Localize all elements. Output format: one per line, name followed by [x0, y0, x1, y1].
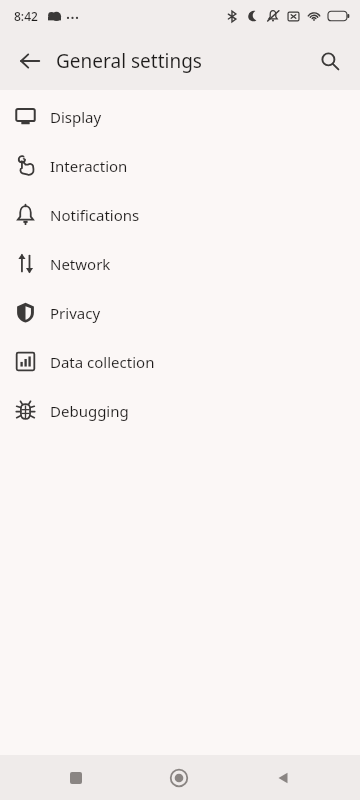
- staticText: General settings: [56, 48, 202, 74]
- button[interactable]: Search: [308, 39, 352, 83]
- staticText: 8:42: [14, 8, 38, 24]
- button[interactable]: Home: [152, 755, 206, 800]
- button[interactable]: Data collection: [0, 337, 360, 386]
- button[interactable]: Debugging: [0, 386, 360, 435]
- button[interactable]: Notifications: [0, 190, 360, 239]
- staticText: Interaction: [50, 156, 128, 176]
- staticText: Privacy: [50, 303, 101, 323]
- staticText: Notifications: [50, 205, 140, 225]
- staticText: Network: [50, 254, 111, 274]
- button[interactable]: Network: [0, 239, 360, 288]
- button[interactable]: Display: [0, 92, 360, 141]
- staticText: Data collection: [50, 352, 155, 372]
- button[interactable]: Back: [256, 755, 310, 800]
- staticText: Display: [50, 107, 102, 127]
- button[interactable]: Recent apps: [49, 755, 103, 800]
- staticText: Debugging: [50, 401, 129, 421]
- button[interactable]: Back: [8, 39, 52, 83]
- button[interactable]: Interaction: [0, 141, 360, 190]
- button[interactable]: Privacy: [0, 288, 360, 337]
